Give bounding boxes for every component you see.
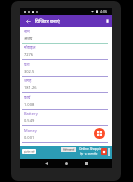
staticText: 302.5: [24, 69, 35, 74]
button[interactable]: मोबाइल: [20, 43, 112, 60]
staticText: कार्य: [24, 95, 31, 100]
button[interactable]: Home: [62, 159, 71, 168]
button[interactable]: Save: [94, 128, 105, 139]
button[interactable]: जगह: [20, 76, 112, 93]
staticText: 1.008: [24, 102, 35, 107]
button[interactable]: Battery: [20, 109, 112, 126]
staticText: इंस्टॉल करें: [24, 150, 35, 154]
staticText: Online Shopping: [79, 147, 105, 151]
staticText: 0.001: [24, 135, 35, 140]
button[interactable]: Delete: [101, 15, 113, 27]
button[interactable]: Back: [22, 15, 35, 27]
button[interactable]: Recents: [82, 159, 91, 168]
staticText: नाम: [24, 29, 30, 34]
staticText: विजिटर बनाएं: [35, 18, 60, 25]
staticText: मोबाइल: [24, 45, 36, 50]
button[interactable]: नाम: [20, 27, 112, 44]
button[interactable]: Money: [20, 126, 112, 143]
staticText: 4:06: [100, 9, 108, 14]
staticText: अजय: [24, 36, 33, 41]
staticText: फ्लिपकार्ट: [63, 148, 75, 152]
staticText: ऐप ★ डाउनलोड: [80, 152, 98, 156]
staticText: 7276: [24, 52, 34, 57]
button[interactable]: कार्य: [20, 93, 112, 110]
staticText: Money: [24, 128, 37, 133]
staticText: जगह: [24, 78, 32, 83]
button[interactable]: इंस्टॉल करें: [20, 146, 112, 159]
button[interactable]: Back: [42, 159, 51, 168]
staticText: 181.26: [24, 85, 37, 90]
staticText: Battery: [24, 111, 38, 116]
staticText: पता: [24, 62, 30, 67]
staticText: 0.549: [24, 118, 35, 123]
button[interactable]: पता: [20, 60, 112, 77]
